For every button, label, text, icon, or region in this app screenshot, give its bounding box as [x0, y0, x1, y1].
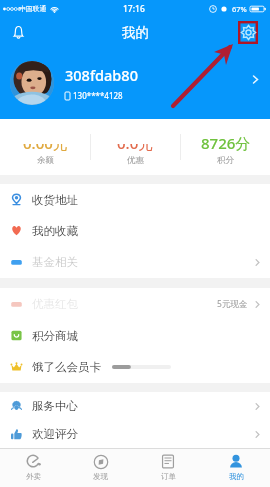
button[interactable]: 服务中心: [0, 392, 270, 420]
button[interactable]: 订单: [134, 449, 202, 487]
staticText: 饿了么会员卡: [32, 360, 101, 374]
button[interactable]: 0.0元: [91, 119, 180, 175]
staticText: 订单: [161, 472, 176, 481]
button[interactable]: 我的: [202, 449, 270, 487]
button[interactable]: 我的收藏: [0, 215, 270, 246]
button[interactable]: 308fdab80: [0, 47, 270, 119]
button[interactable]: 饿了么会员卡: [0, 351, 270, 383]
staticText: 优惠: [127, 155, 144, 166]
button[interactable]: Settings: [238, 21, 258, 44]
staticText: 我的收藏: [32, 224, 78, 238]
staticText: 8726分: [201, 133, 251, 153]
staticText: 基金相关: [32, 255, 78, 269]
staticText: 5元现金: [217, 298, 248, 310]
staticText: 0.0元: [117, 133, 154, 153]
staticText: 中国联通: [19, 4, 47, 13]
staticText: 余额: [37, 155, 54, 166]
staticText: 积分: [217, 155, 234, 166]
staticText: 308fdab80: [65, 65, 138, 85]
button[interactable]: 积分商城: [0, 320, 270, 351]
staticText: 发现: [93, 472, 108, 481]
button[interactable]: 收货地址: [0, 184, 270, 215]
button[interactable]: Notifications: [5, 19, 31, 45]
staticText: 我的: [122, 24, 149, 41]
staticText: 130****4128: [73, 90, 123, 101]
staticText: 服务中心: [32, 399, 78, 413]
staticText: 17:16: [123, 3, 145, 15]
staticText: 我的: [229, 472, 244, 481]
staticText: 0.00元: [23, 133, 68, 153]
staticText: 收货地址: [32, 193, 78, 207]
button[interactable]: 发现: [67, 449, 134, 487]
staticText: 积分商城: [32, 329, 78, 343]
staticText: 67%: [232, 4, 247, 14]
button[interactable]: 优惠红包: [0, 288, 270, 320]
button[interactable]: 外卖: [0, 449, 67, 487]
staticText: 外卖: [26, 472, 41, 481]
button[interactable]: 欢迎评分: [0, 420, 270, 448]
button[interactable]: 基金相关: [0, 246, 270, 278]
button[interactable]: 0.00元: [0, 119, 90, 175]
staticText: 优惠红包: [32, 297, 78, 311]
button[interactable]: 8726分: [181, 119, 270, 175]
staticText: 欢迎评分: [32, 427, 78, 441]
